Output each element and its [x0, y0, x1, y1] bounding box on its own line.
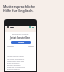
staticText: Weiter — [18, 41, 25, 44]
staticText: Jetzt bestellen — [10, 36, 31, 40]
button[interactable]: Bestelle online — [4, 19, 37, 72]
staticText: Bestelle online — [12, 32, 29, 35]
staticText: Muttersprachliche Hilfe fur Englisch. — [3, 4, 36, 13]
staticText: Lorem ipsum dolor sit amet consetetur sa… — [7, 55, 26, 70]
button[interactable]: Weiter — [11, 41, 31, 44]
